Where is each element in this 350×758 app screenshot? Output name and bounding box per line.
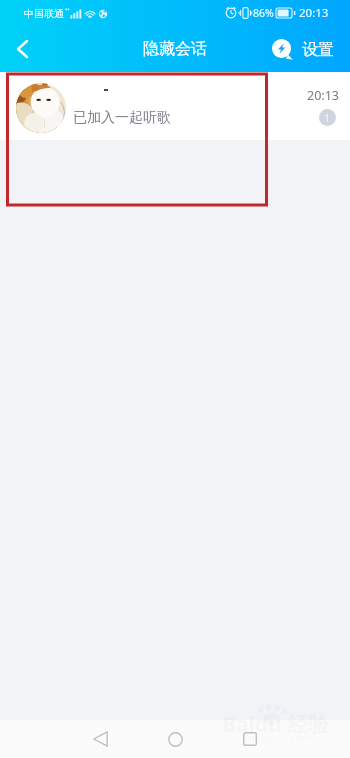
staticText: Baidu 经验 — [222, 710, 330, 739]
button[interactable]: Back — [0, 27, 44, 71]
staticText: 已加入一起听歌 — [73, 109, 171, 127]
staticText: 1 — [324, 110, 331, 125]
button[interactable]: Recents — [228, 720, 272, 758]
staticText: jingyan.baidu.com — [224, 731, 311, 745]
staticText: 20:13 — [299, 5, 329, 21]
button[interactable]: 设置 — [272, 39, 334, 60]
button[interactable]: 已加入一起听歌 — [0, 72, 350, 140]
button[interactable]: Back — [78, 720, 122, 758]
staticText: 86% — [253, 6, 274, 20]
staticText: 设置 — [302, 40, 334, 60]
button[interactable]: Home — [153, 720, 197, 758]
staticText: 隐藏会话 — [143, 39, 207, 59]
staticText: 中国联通 — [24, 7, 64, 20]
staticText: 20:13 — [307, 87, 339, 104]
